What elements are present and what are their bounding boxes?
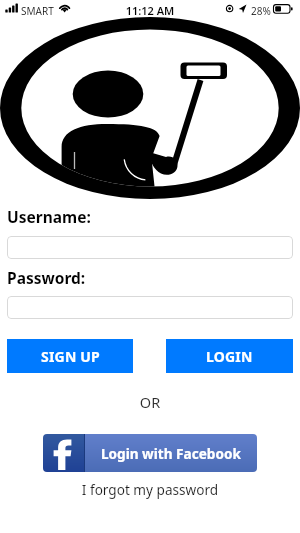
staticText: OR (0, 392, 300, 412)
staticText: 11:12 AM (0, 3, 300, 18)
staticText: Login with Facebook (101, 444, 241, 463)
button[interactable]: Login with Facebook (43, 434, 257, 472)
staticText: Password: (7, 267, 86, 288)
button[interactable]: LOGIN (166, 339, 293, 373)
staticText: SMART (21, 4, 54, 18)
staticText: 28% (251, 4, 271, 18)
button[interactable] (7, 296, 293, 319)
staticText: LOGIN (206, 347, 253, 366)
staticText: SIGN UP (41, 347, 100, 366)
button[interactable] (7, 236, 293, 259)
staticText: Username: (7, 206, 91, 227)
staticText: I forgot my password (0, 480, 300, 499)
button[interactable]: SIGN UP (7, 339, 133, 373)
